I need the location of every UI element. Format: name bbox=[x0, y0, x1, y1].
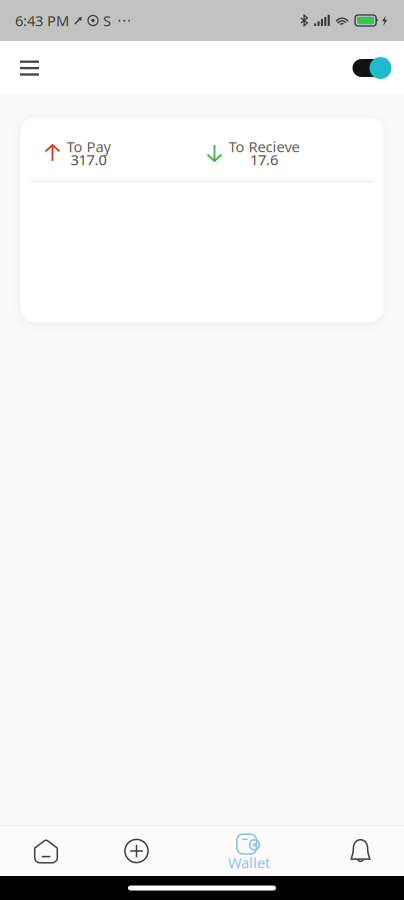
staticText: Wallet bbox=[228, 853, 270, 872]
staticText: ⋯ bbox=[117, 12, 132, 29]
staticText: S bbox=[103, 11, 111, 30]
button[interactable]: Notifications bbox=[317, 826, 404, 876]
staticText: 317.0 bbox=[70, 150, 106, 169]
button[interactable]: Wallet bbox=[181, 826, 317, 876]
staticText: To Pay bbox=[66, 137, 110, 156]
staticText: 17.6 bbox=[250, 150, 278, 169]
staticText: 6:43 PM bbox=[15, 11, 69, 30]
button[interactable]: Toggle bbox=[336, 41, 404, 95]
button[interactable]: Add bbox=[92, 826, 181, 876]
button[interactable]: Home bbox=[0, 826, 92, 876]
button[interactable]: Menu bbox=[0, 42, 59, 93]
staticText: To Recieve bbox=[228, 137, 299, 156]
